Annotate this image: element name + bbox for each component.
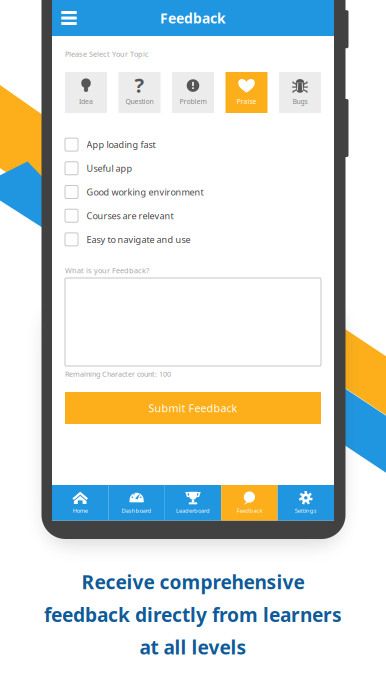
button[interactable]: Leaderboard xyxy=(165,485,221,520)
button[interactable]: Home xyxy=(52,485,108,520)
button[interactable]: App loading fast xyxy=(65,133,321,156)
staticText: What is your Feedback? xyxy=(65,265,149,275)
button[interactable]: Menu xyxy=(52,0,86,36)
button[interactable]: Dashboard xyxy=(108,485,165,520)
staticText: Question xyxy=(125,97,153,106)
button[interactable]: Good working environment xyxy=(65,180,321,204)
staticText: Courses are relevant xyxy=(86,209,173,222)
staticText: Please Select Your Topic xyxy=(65,49,149,59)
staticText: at all levels xyxy=(139,634,246,660)
staticText: Dashboard xyxy=(122,507,152,514)
button[interactable]: Courses are relevant xyxy=(65,204,321,227)
staticText: App loading fast xyxy=(86,138,155,151)
button[interactable]: ? xyxy=(118,72,160,113)
button[interactable]: Problem xyxy=(172,72,214,113)
staticText: Receive comprehensive xyxy=(81,569,304,595)
staticText: Useful app xyxy=(86,162,132,174)
button[interactable]: Feedback xyxy=(221,485,278,520)
button[interactable]: Praise xyxy=(225,72,267,113)
staticText: Leaderboard xyxy=(176,507,210,514)
button[interactable]: Useful app xyxy=(65,156,321,180)
staticText: feedback directly from learners xyxy=(44,601,342,628)
staticText: Submit Feedback xyxy=(148,401,237,415)
staticText: Problem xyxy=(179,97,206,106)
staticText: Idea xyxy=(79,97,93,106)
staticText: Remaining Character count: 100 xyxy=(65,369,171,379)
staticText: Praise xyxy=(236,97,256,106)
staticText: Feedback xyxy=(236,507,262,514)
staticText: Bugs xyxy=(292,97,307,106)
staticText: Settings xyxy=(295,507,317,514)
button[interactable]: Submit Feedback xyxy=(65,392,321,424)
button[interactable]: Idea xyxy=(65,72,107,113)
staticText: Home xyxy=(73,507,88,514)
staticText: Good working environment xyxy=(86,186,203,198)
staticText: ? xyxy=(134,71,144,99)
button[interactable]: Easy to navigate and use xyxy=(65,228,321,251)
staticText: Feedback xyxy=(160,9,226,27)
button[interactable]: Bugs xyxy=(279,72,321,113)
staticText: Easy to navigate and use xyxy=(86,233,190,245)
button[interactable]: Settings xyxy=(278,485,334,520)
